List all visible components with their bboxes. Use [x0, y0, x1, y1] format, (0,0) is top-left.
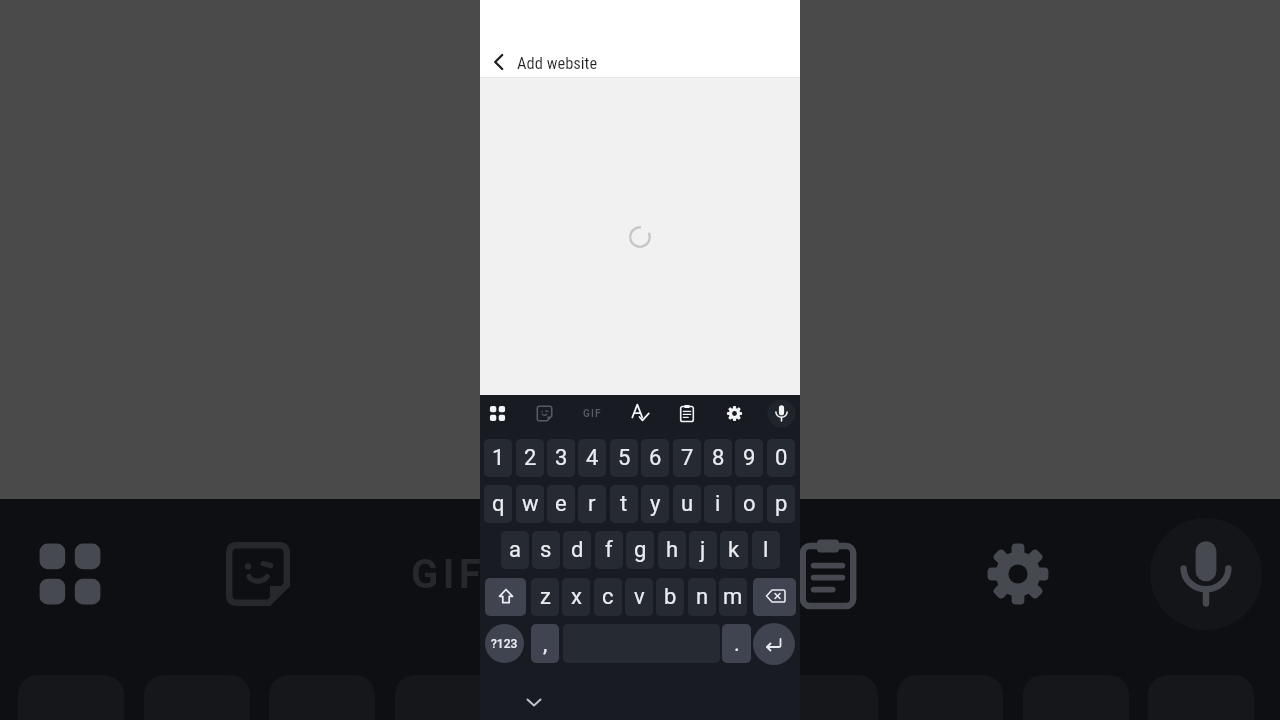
button[interactable]: s: [532, 531, 560, 569]
button[interactable]: 0: [767, 439, 795, 477]
staticText: a: [509, 537, 521, 563]
staticText: d: [571, 537, 584, 563]
button[interactable]: h: [658, 531, 686, 569]
staticText: b: [664, 584, 677, 610]
staticText: 3: [555, 445, 568, 471]
staticText: 5: [618, 445, 631, 471]
button[interactable]: 4: [578, 439, 606, 477]
button[interactable]: m: [719, 578, 747, 616]
button[interactable]: 6: [641, 439, 669, 477]
button[interactable]: p: [767, 485, 795, 523]
staticText: .: [734, 631, 740, 657]
staticText: ?123: [491, 637, 518, 651]
button[interactable]: w: [516, 485, 544, 523]
button[interactable]: 5: [610, 439, 638, 477]
button[interactable]: 7: [673, 439, 701, 477]
button[interactable]: [720, 399, 750, 435]
staticText: ,: [543, 631, 548, 657]
button[interactable]: a: [501, 531, 529, 569]
button[interactable]: [625, 399, 655, 435]
button[interactable]: v: [625, 578, 653, 616]
staticText: l: [763, 537, 769, 563]
button[interactable]: k: [720, 531, 748, 569]
button[interactable]: [486, 50, 510, 74]
staticText: v: [634, 584, 645, 610]
button[interactable]: d: [563, 531, 591, 569]
button[interactable]: 8: [704, 439, 732, 477]
button[interactable]: ,: [531, 624, 559, 663]
staticText: c: [602, 584, 614, 610]
button[interactable]: j: [689, 531, 717, 569]
staticText: GIF: [583, 408, 602, 420]
staticText: j: [700, 537, 706, 563]
button[interactable]: [672, 399, 702, 435]
staticText: s: [540, 537, 552, 563]
button[interactable]: [753, 623, 795, 665]
button[interactable]: b: [656, 578, 684, 616]
staticText: q: [492, 491, 505, 517]
staticText: 1: [492, 445, 505, 471]
staticText: i: [715, 491, 721, 517]
staticText: h: [666, 537, 679, 563]
button[interactable]: i: [704, 485, 732, 523]
staticText: 8: [712, 445, 725, 471]
button[interactable]: [485, 578, 526, 616]
staticText: x: [571, 584, 582, 610]
button[interactable]: 1: [484, 439, 512, 477]
staticText: u: [681, 491, 694, 517]
staticText: n: [696, 584, 709, 610]
staticText: r: [588, 491, 596, 517]
button[interactable]: 9: [735, 439, 763, 477]
button[interactable]: 3: [547, 439, 575, 477]
staticText: k: [728, 537, 740, 563]
staticText: 2: [524, 445, 537, 471]
staticText: g: [634, 537, 647, 563]
staticText: GIF: [411, 551, 486, 598]
staticText: m: [723, 584, 743, 610]
staticText: 6: [649, 445, 662, 471]
staticText: o: [743, 491, 756, 517]
button[interactable]: y: [641, 485, 669, 523]
button[interactable]: GIF: [577, 407, 607, 420]
staticText: 4: [586, 445, 599, 471]
button[interactable]: t: [610, 485, 638, 523]
button[interactable]: n: [688, 578, 716, 616]
staticText: w: [522, 491, 539, 517]
button[interactable]: x: [562, 578, 590, 616]
button[interactable]: o: [735, 485, 763, 523]
button[interactable]: 2: [516, 439, 544, 477]
button[interactable]: r: [578, 485, 606, 523]
staticText: 9: [743, 445, 756, 471]
button[interactable]: [767, 399, 797, 435]
button[interactable]: e: [547, 485, 575, 523]
button[interactable]: g: [626, 531, 654, 569]
button[interactable]: l: [752, 531, 780, 569]
button[interactable]: GIF: [388, 548, 508, 600]
button[interactable]: [530, 399, 560, 435]
staticText: 7: [681, 445, 694, 471]
button[interactable]: .: [722, 624, 751, 663]
staticText: y: [650, 491, 661, 517]
staticText: t: [620, 491, 628, 517]
staticText: z: [540, 584, 551, 610]
button[interactable]: q: [484, 485, 512, 523]
button[interactable]: [753, 578, 796, 616]
button[interactable]: [522, 690, 546, 714]
staticText: p: [775, 491, 788, 517]
staticText: f: [605, 537, 613, 563]
button[interactable]: f: [595, 531, 623, 569]
button[interactable]: ?123: [485, 624, 524, 663]
staticText: Add website: [517, 54, 598, 73]
staticText: e: [555, 491, 567, 517]
button[interactable]: c: [594, 578, 622, 616]
button[interactable]: [483, 399, 513, 435]
button[interactable]: z: [531, 578, 559, 616]
staticText: 0: [775, 445, 788, 471]
button[interactable]: u: [673, 485, 701, 523]
